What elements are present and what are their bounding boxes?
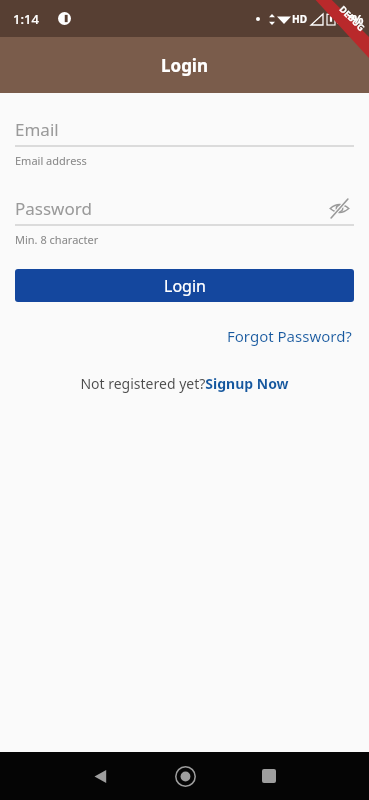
button[interactable]: Home bbox=[143, 752, 227, 800]
button[interactable]: Back bbox=[58, 752, 143, 800]
staticText: HD bbox=[292, 12, 307, 26]
staticText: 27% bbox=[337, 10, 364, 28]
staticText: Email bbox=[15, 118, 59, 141]
button[interactable]: Show password bbox=[324, 193, 354, 223]
staticText: Password bbox=[15, 197, 92, 220]
staticText: Forgot Password? bbox=[227, 326, 352, 346]
staticText: Login bbox=[161, 54, 209, 77]
button[interactable]: Login bbox=[15, 269, 354, 302]
staticText: 1:14 bbox=[13, 10, 39, 28]
staticText: Min. 8 character bbox=[15, 232, 99, 247]
staticText: DEBUG bbox=[337, 3, 368, 33]
button[interactable]: Not registered yet?Signup Now bbox=[78, 372, 291, 395]
button[interactable]: Forgot Password? bbox=[225, 324, 354, 348]
staticText: Not registered yet?Signup Now bbox=[80, 374, 289, 393]
button[interactable]: Recent apps bbox=[227, 752, 311, 800]
staticText: Login bbox=[164, 275, 206, 297]
staticText: Email address bbox=[15, 153, 87, 168]
